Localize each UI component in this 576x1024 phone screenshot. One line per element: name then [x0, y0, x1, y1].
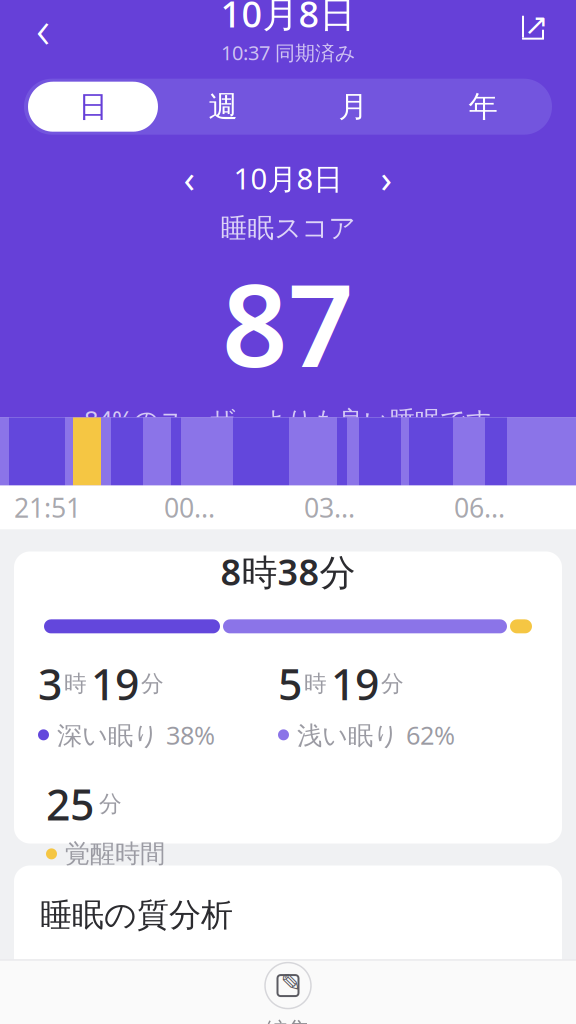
staticText: 25: [46, 776, 94, 832]
button[interactable]: 週: [158, 82, 288, 132]
button[interactable]: 共有: [504, 0, 562, 57]
staticText: ‹: [36, 0, 50, 63]
staticText: 日: [78, 89, 107, 125]
staticText: 分: [99, 790, 122, 818]
staticText: 月: [338, 89, 367, 125]
button[interactable]: ✓: [218, 960, 358, 1024]
staticText: 19: [331, 655, 379, 712]
staticText: 06...: [454, 490, 505, 525]
staticText: 週: [208, 89, 237, 125]
button[interactable]: 前の日: [171, 160, 207, 196]
staticText: 19: [91, 655, 139, 712]
staticText: 10:37 同期済み: [221, 39, 355, 66]
staticText: 21:51: [14, 490, 81, 525]
button[interactable]: 年: [418, 82, 548, 132]
staticText: 5: [278, 655, 302, 712]
staticText: 87: [222, 246, 354, 399]
staticText: ›: [380, 153, 392, 203]
staticText: 03...: [304, 490, 355, 525]
button[interactable]: 月: [288, 82, 418, 132]
staticText: 編集: [265, 1017, 311, 1024]
staticText: 浅い眠り 62%: [297, 718, 455, 752]
staticText: 年: [468, 89, 497, 125]
staticText: 84%のユーザーよりも良い睡眠です: [84, 403, 492, 436]
staticText: 3: [38, 655, 62, 712]
staticText: 覚醒時間: [65, 838, 165, 869]
staticText: 時: [64, 670, 87, 698]
staticText: 時: [304, 670, 327, 698]
button[interactable]: 戻る: [14, 0, 72, 57]
staticText: ✎: [280, 969, 301, 997]
staticText: 00...: [164, 490, 215, 525]
staticText: 睡眠の質分析: [40, 895, 233, 935]
button[interactable]: 日: [28, 82, 158, 132]
staticText: 10月8日: [233, 159, 342, 198]
staticText: ‹: [183, 153, 195, 203]
staticText: ↗: [524, 8, 549, 41]
staticText: 深い眠り 38%: [57, 718, 215, 752]
staticText: 分: [141, 670, 164, 698]
staticText: 8時38分: [220, 548, 355, 595]
button[interactable]: 次の日: [368, 160, 404, 196]
staticText: 分: [381, 670, 404, 698]
staticText: 睡眠スコア: [220, 212, 355, 244]
staticText: 10月8日: [220, 0, 355, 37]
